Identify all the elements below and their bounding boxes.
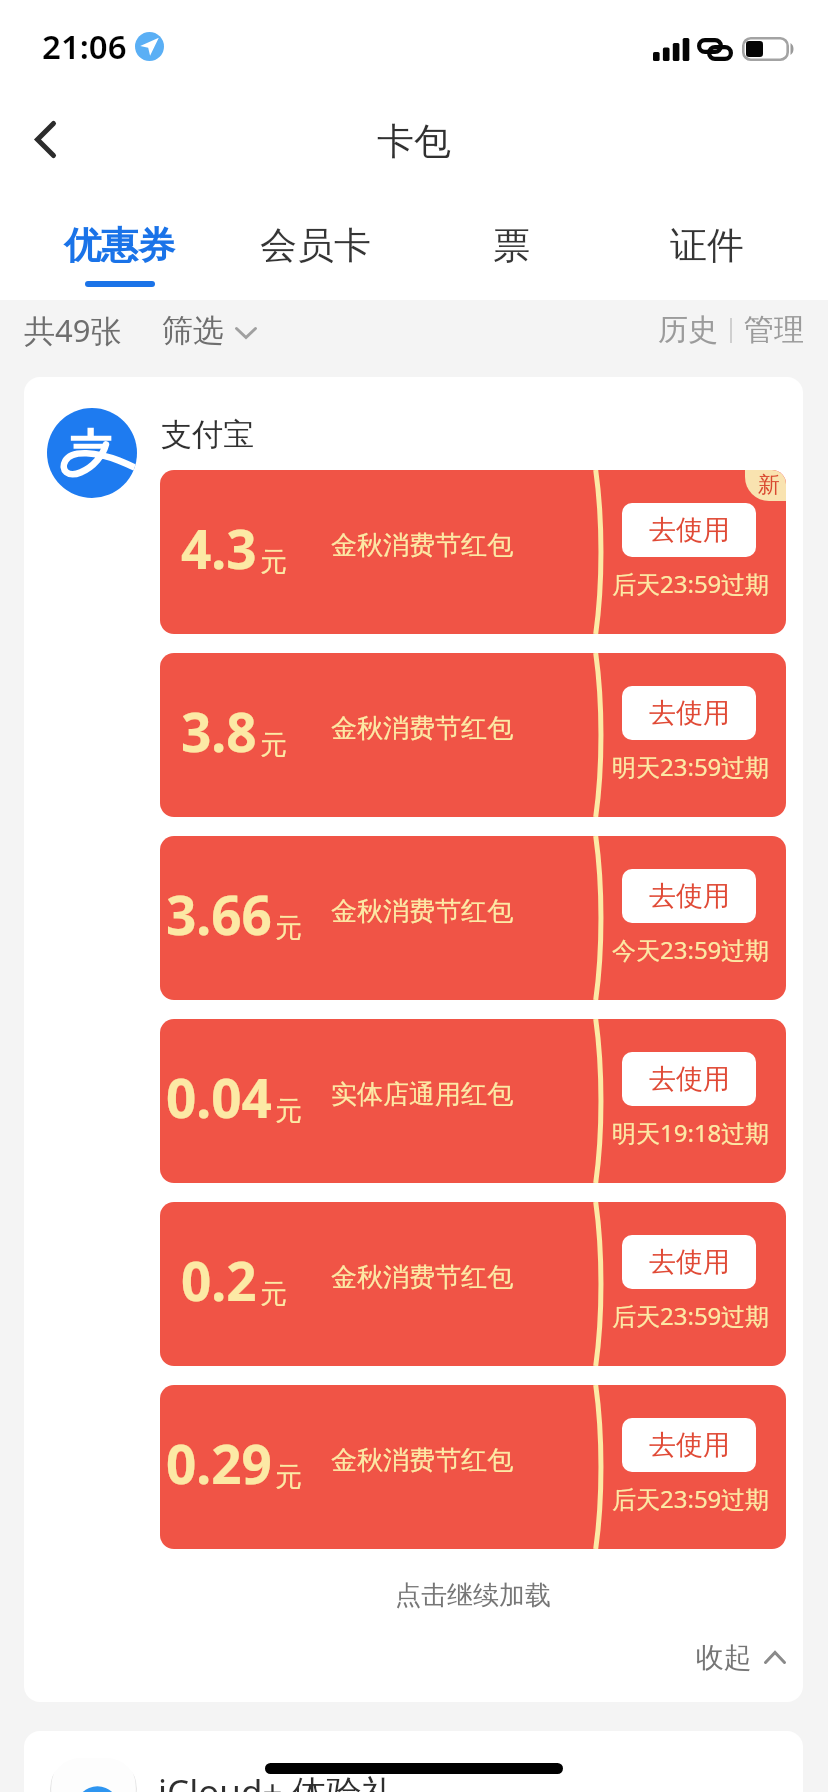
staticText: 后天23:59过期	[612, 567, 770, 600]
staticText: 3.8	[181, 695, 257, 767]
staticText: 元	[260, 545, 287, 579]
staticText: 收起	[696, 1640, 752, 1675]
staticText: 去使用	[649, 879, 730, 913]
button[interactable]: 筛选	[162, 311, 257, 350]
button[interactable]: 3.66	[160, 836, 786, 1000]
staticText: 新	[758, 471, 780, 499]
staticText: 去使用	[649, 1428, 730, 1462]
staticText: 去使用	[649, 696, 730, 730]
staticText: 0.2	[181, 1244, 257, 1316]
button[interactable]: 管理	[740, 311, 808, 349]
staticText: 金秋消费节红包	[331, 529, 513, 562]
staticText: 后天23:59过期	[612, 1482, 770, 1515]
staticText: 去使用	[649, 513, 730, 547]
button[interactable]: 收起	[24, 1640, 786, 1675]
staticText: 明天19:18过期	[612, 1116, 770, 1149]
staticText: 会员卡	[260, 222, 371, 269]
staticText: 去使用	[649, 1062, 730, 1096]
button[interactable]: 历史	[654, 311, 722, 349]
button[interactable]: 优惠券	[22, 190, 217, 300]
staticText: 共49张	[24, 309, 122, 351]
staticText: 历史	[658, 311, 718, 349]
staticText: 管理	[744, 311, 804, 349]
button[interactable]: 会员卡	[217, 190, 413, 300]
staticText: 筛选	[162, 311, 224, 350]
staticText: 21:06	[42, 24, 127, 69]
button[interactable]: 去使用	[622, 1235, 756, 1289]
staticText: 金秋消费节红包	[331, 895, 513, 928]
staticText: 票	[493, 222, 530, 269]
staticText: 4.3	[181, 512, 257, 584]
staticText: 后天23:59过期	[612, 1299, 770, 1332]
button[interactable]: 证件	[609, 190, 805, 300]
button[interactable]: 去使用	[622, 869, 756, 923]
staticText: 卡包	[377, 118, 451, 165]
button[interactable]: 去使用	[622, 1052, 756, 1106]
staticText: 0.29	[166, 1427, 272, 1499]
staticText: 元	[275, 911, 302, 945]
staticText: 实体店通用红包	[331, 1078, 513, 1111]
button[interactable]: 点击继续加载	[160, 1579, 786, 1612]
staticText: 明天23:59过期	[612, 750, 770, 783]
staticText: 元	[275, 1460, 302, 1494]
staticText: 证件	[670, 222, 744, 269]
button[interactable]: 去使用	[622, 1418, 756, 1472]
staticText: 点击继续加载	[395, 1579, 551, 1612]
button[interactable]: Back	[7, 105, 83, 181]
staticText: 元	[275, 1094, 302, 1128]
staticText: 金秋消费节红包	[331, 712, 513, 745]
staticText: 元	[260, 1277, 287, 1311]
button[interactable]: 0.29	[160, 1385, 786, 1549]
button[interactable]: 去使用	[622, 686, 756, 740]
button[interactable]: 0.04	[160, 1019, 786, 1183]
button[interactable]: 4.3	[160, 470, 786, 634]
staticText: 0.04	[166, 1061, 272, 1133]
staticText: 金秋消费节红包	[331, 1444, 513, 1477]
staticText: iCloud+ 体验礼,	[158, 1768, 407, 1792]
staticText: 3.66	[166, 878, 272, 950]
button[interactable]: 3.8	[160, 653, 786, 817]
staticText: 支付宝	[161, 415, 254, 454]
staticText: 去使用	[649, 1245, 730, 1279]
staticText: 金秋消费节红包	[331, 1261, 513, 1294]
button[interactable]: 去使用	[622, 503, 756, 557]
staticText: 今天23:59过期	[612, 933, 770, 966]
staticText: 优惠券	[64, 222, 175, 269]
button[interactable]: 票	[413, 190, 609, 300]
staticText: 元	[260, 728, 287, 762]
button[interactable]: 0.2	[160, 1202, 786, 1366]
